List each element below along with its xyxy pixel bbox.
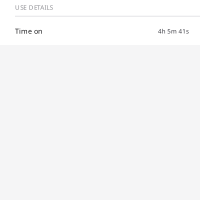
staticText: USE DETAILS <box>15 3 53 11</box>
staticText: 4h 5m 41s <box>158 27 189 35</box>
button[interactable]: Time on <box>0 17 200 45</box>
staticText: Time on <box>15 26 42 36</box>
